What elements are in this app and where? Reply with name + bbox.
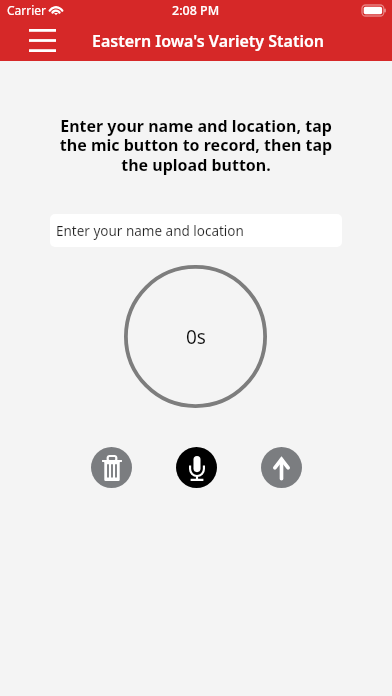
staticText: Enter your name and location [56, 222, 244, 240]
button[interactable]: Enter your name and location [50, 214, 342, 247]
button[interactable]: Delete recording [91, 447, 132, 488]
staticText: Carrier [7, 2, 47, 18]
button[interactable]: Open navigation menu [22, 20, 62, 60]
staticText: 2:08 PM [172, 2, 220, 19]
staticText: 0s [186, 324, 206, 350]
button[interactable]: Upload recording [261, 447, 302, 488]
staticText: Eastern Iowa's Variety Station [92, 30, 325, 52]
button[interactable]: Record [176, 447, 217, 488]
staticText: Enter your name and location, tap the mi… [55, 115, 337, 176]
